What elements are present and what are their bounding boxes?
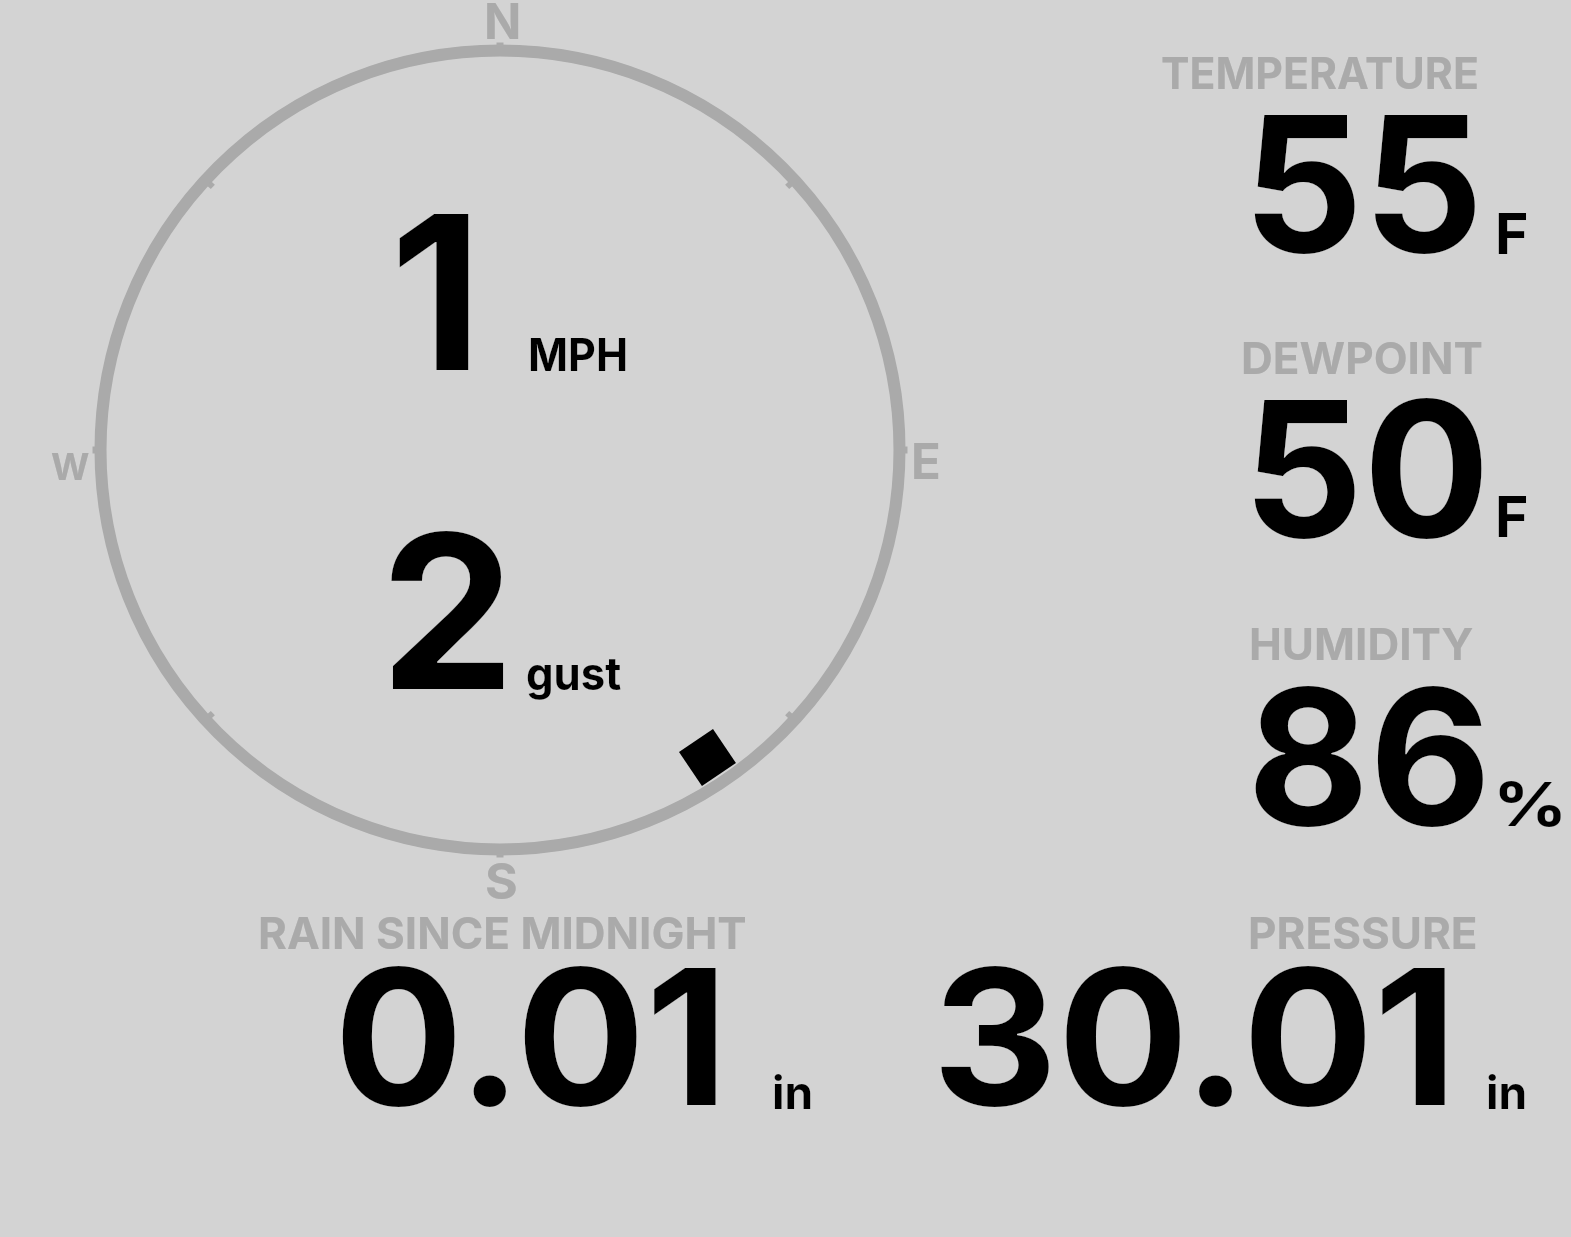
- staticText: 1: [390, 163, 483, 422]
- staticText: F: [1495, 482, 1529, 551]
- staticText: 2: [380, 482, 515, 741]
- staticText: S: [485, 851, 518, 911]
- staticText: in: [1486, 1064, 1528, 1120]
- staticText: RAIN SINCE MIDNIGHT: [258, 906, 747, 959]
- staticText: W: [51, 444, 90, 489]
- staticText: in: [772, 1064, 814, 1120]
- staticText: DEWPOINT: [1241, 331, 1483, 384]
- other: Wind direction compass: [0, 0, 1571, 1237]
- staticText: gust: [526, 646, 622, 700]
- staticText: TEMPERATURE: [1161, 46, 1479, 99]
- staticText: E: [911, 432, 941, 491]
- staticText: 0.01: [334, 923, 729, 1150]
- staticText: 50: [1243, 355, 1490, 582]
- staticText: PRESSURE: [1248, 906, 1478, 959]
- staticText: 55: [1243, 70, 1484, 297]
- staticText: MPH: [528, 327, 628, 381]
- staticText: HUMIDITY: [1249, 617, 1474, 670]
- staticText: F: [1495, 199, 1529, 268]
- staticText: %: [1493, 768, 1567, 841]
- staticText: N: [484, 0, 522, 51]
- staticText: 86: [1247, 643, 1492, 870]
- staticText: 30.01: [932, 923, 1458, 1150]
